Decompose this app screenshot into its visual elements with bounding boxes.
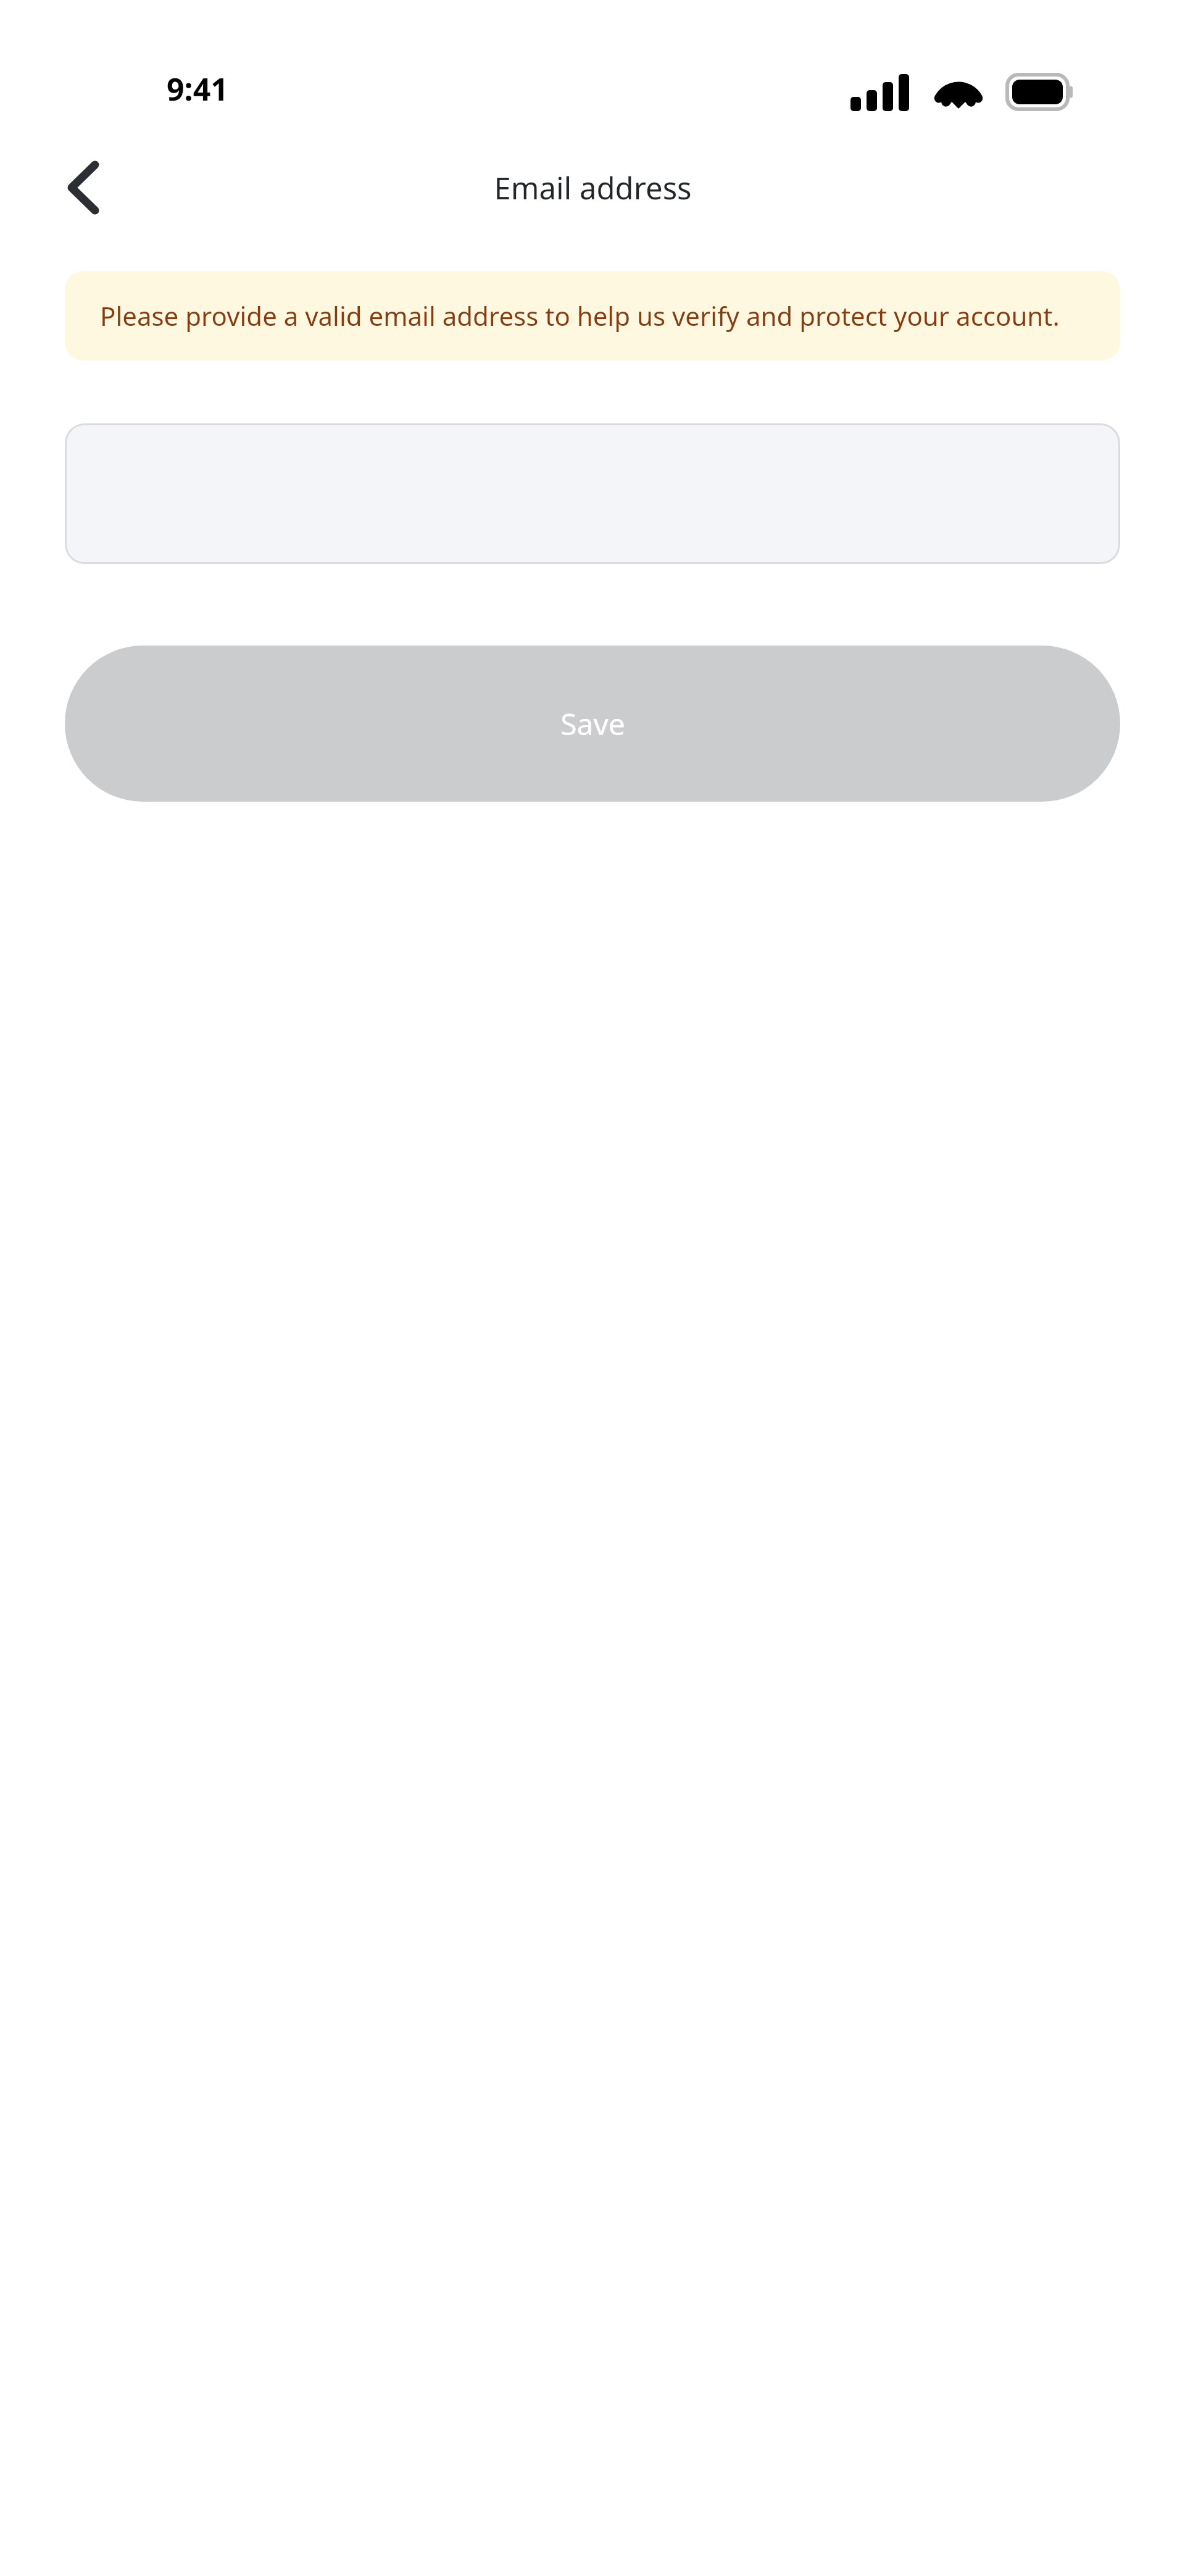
staticText: 9:41 — [167, 68, 228, 110]
staticText: Save — [560, 704, 625, 744]
button[interactable]: Email address input — [65, 423, 1120, 564]
button[interactable]: Back — [44, 149, 121, 226]
staticText: Email address — [494, 167, 692, 209]
button[interactable]: Save — [65, 646, 1120, 802]
staticText: Please provide a valid email address to … — [100, 298, 1060, 333]
